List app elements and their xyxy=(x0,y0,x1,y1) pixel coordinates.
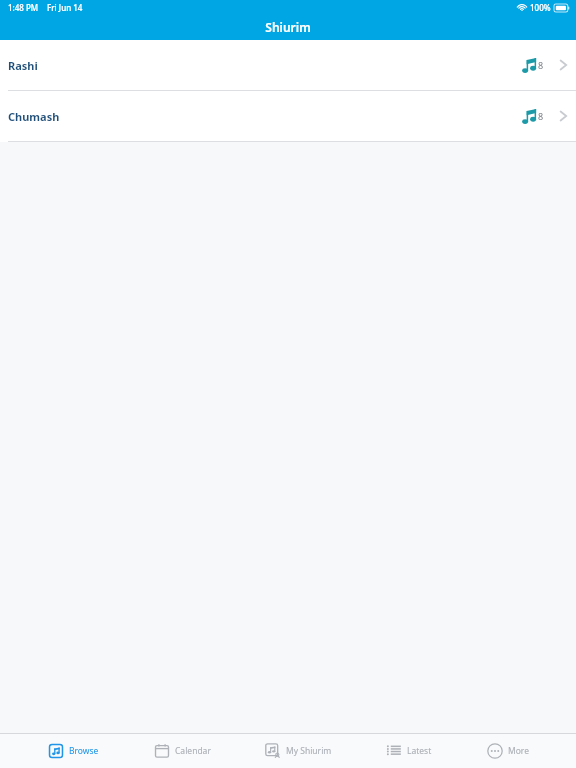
button[interactable]: Chumash xyxy=(0,91,576,141)
staticText: Latest xyxy=(407,745,432,757)
button[interactable]: Latest xyxy=(379,734,438,768)
staticText: 8 xyxy=(538,59,544,71)
staticText: Shiurim xyxy=(265,19,311,35)
staticText: Calendar xyxy=(175,745,211,757)
button[interactable]: Calendar xyxy=(147,734,217,768)
staticText: Fri Jun 14 xyxy=(47,2,83,13)
staticText: Browse xyxy=(69,745,99,757)
staticText: Rashi xyxy=(8,58,38,73)
staticText: Chumash xyxy=(8,109,60,124)
staticText: My Shiurim xyxy=(286,745,332,757)
button[interactable]: Rashi xyxy=(0,40,576,90)
button[interactable]: Browse xyxy=(41,734,105,768)
staticText: 100% xyxy=(530,2,551,13)
button[interactable]: More xyxy=(480,734,535,768)
staticText: 1:48 PM xyxy=(8,2,39,13)
staticText: 8 xyxy=(538,110,544,122)
button[interactable]: My Shiurim xyxy=(258,734,338,768)
staticText: More xyxy=(508,745,529,757)
